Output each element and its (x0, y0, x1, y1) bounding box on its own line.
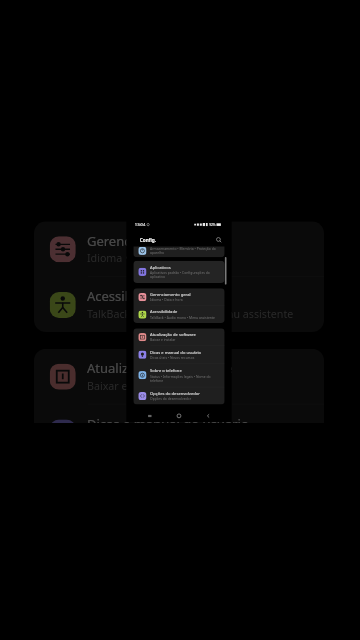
button[interactable]: Recentes (144, 410, 156, 422)
staticText: Dicas e manual do usuário (150, 349, 201, 355)
staticText: 92% (209, 222, 215, 227)
staticText: Armazenamento • Memória • Proteção do ap… (150, 246, 219, 255)
staticText: Dicas úteis • Novos recursos (150, 355, 194, 360)
button[interactable]: Dicas e manual do usuário (133, 346, 225, 363)
staticText: Baixar e instalar (150, 338, 175, 342)
staticText: Idioma • Data e hora (150, 298, 183, 302)
staticText: Idioma • Data e hora (87, 251, 191, 266)
staticText: TalkBack • Áudio mono • Menu assistente (150, 315, 215, 320)
staticText: Gerenciamento geral (87, 232, 216, 249)
button[interactable]: Acessibilidade (133, 306, 225, 323)
staticText: Aplicativos padrão • Configurações do ap… (150, 271, 219, 279)
staticText: Atualização de software (150, 332, 196, 337)
staticText: Atualização de software (87, 359, 233, 377)
button[interactable]: Gerenciamento geral (133, 288, 225, 306)
staticText: Aplicativos (150, 265, 171, 270)
staticText: Baixar e instalar (87, 378, 168, 393)
staticText: Config. (140, 237, 156, 243)
staticText: Sobre o telefone (150, 368, 182, 373)
staticText: TalkBack • Áudio mono • Menu assistente (87, 307, 293, 322)
button[interactable]: Aplicativos (133, 261, 225, 283)
button[interactable]: Voltar (202, 410, 214, 422)
staticText: Gerenciamento geral (150, 291, 191, 297)
button[interactable]: Opções do desenvolvedor (133, 387, 225, 404)
staticText: 13:04 (135, 222, 145, 227)
button[interactable]: Acessibilidade (34, 277, 324, 332)
button[interactable]: Sobre o telefone (133, 363, 225, 387)
button[interactable]: Pesquisar (216, 237, 222, 243)
button[interactable]: Atualização de software (34, 349, 324, 404)
staticText: Dicas e manual do usuário (87, 415, 250, 423)
staticText: Acessibilidade (87, 287, 174, 305)
staticText: Opções do desenvolvedor (150, 390, 200, 396)
button[interactable]: Início (173, 410, 185, 422)
staticText: Opções do desenvolvedor (150, 397, 191, 401)
button[interactable]: Dicas e manual do usuário (34, 405, 324, 423)
staticText: Acessibilidade (150, 309, 177, 315)
button[interactable]: Atualização de software (133, 328, 225, 346)
button[interactable]: Assistência do dispositivo (133, 246, 225, 257)
staticText: Status • Informações legais • Nome do te… (150, 374, 219, 382)
button[interactable]: Gerenciamento geral (34, 221, 324, 276)
